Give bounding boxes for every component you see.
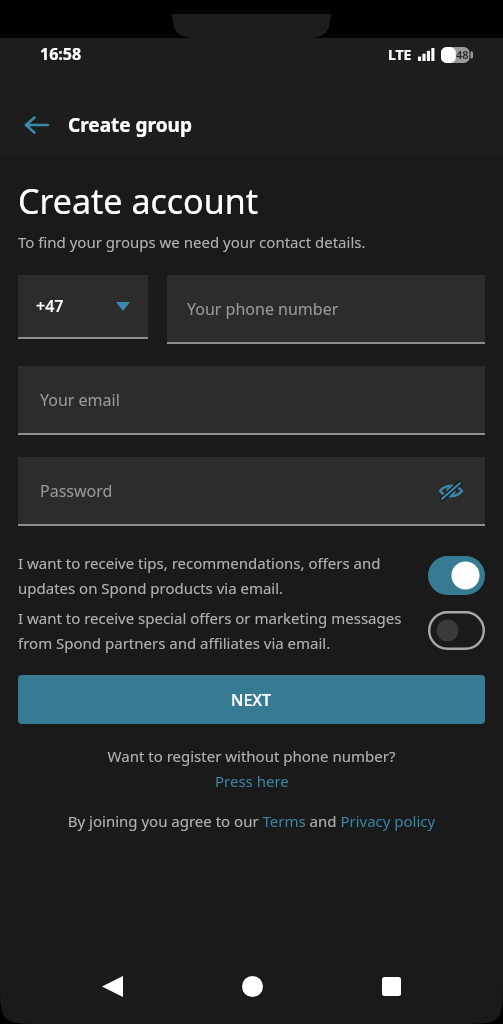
button[interactable]: Recents — [363, 958, 419, 1014]
button[interactable]: NEXT — [18, 675, 485, 724]
staticText: To find your groups we need your contact… — [18, 232, 366, 252]
button[interactable]: Home — [224, 958, 280, 1014]
button[interactable]: +47 — [18, 275, 148, 339]
button[interactable]: I want to receive tips, recommendations,… — [18, 553, 485, 598]
button[interactable]: Press here — [0, 771, 503, 791]
staticText: I want to receive special offers or mark… — [18, 608, 416, 653]
staticText: I want to receive tips, recommendations,… — [18, 553, 416, 598]
staticText: Create group — [68, 112, 192, 138]
staticText: Want to register without phone number? — [0, 746, 503, 766]
button[interactable]: Show password — [431, 471, 471, 511]
staticText: LTE — [388, 45, 412, 64]
staticText: Password — [40, 480, 113, 502]
button[interactable]: Back — [84, 958, 140, 1014]
staticText: 16:58 — [40, 43, 82, 65]
button[interactable]: I want to receive special offers or mark… — [18, 608, 485, 653]
staticText: 48 — [456, 47, 469, 62]
button[interactable]: Your email — [18, 366, 485, 435]
button[interactable]: Password — [18, 457, 485, 526]
staticText: Your phone number — [187, 298, 339, 320]
staticText: Press here — [215, 771, 289, 791]
staticText: NEXT — [231, 689, 272, 711]
staticText: By joining you agree to our Terms and Pr… — [0, 811, 503, 831]
staticText: Your email — [40, 389, 120, 411]
button[interactable]: Back — [12, 100, 62, 150]
staticText: Create account — [18, 178, 258, 224]
staticText: +47 — [36, 295, 64, 317]
button[interactable]: Your phone number — [167, 275, 485, 344]
